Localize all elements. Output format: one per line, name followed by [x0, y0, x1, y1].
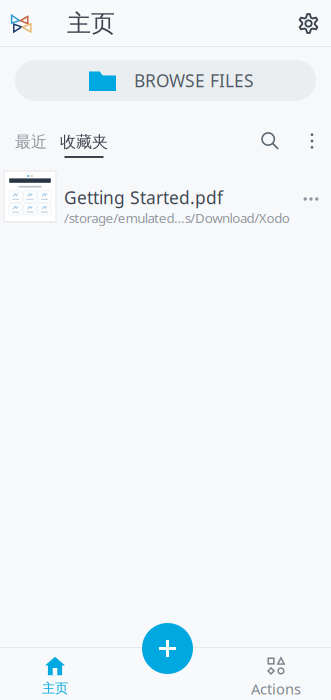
button[interactable]: More options [298, 128, 326, 154]
staticText: 收藏夹 [60, 132, 108, 152]
staticText: 最近 [15, 132, 47, 152]
staticText: 主页 [42, 680, 68, 696]
button[interactable]: 收藏夹 [58, 128, 110, 158]
staticText: Actions [251, 679, 301, 698]
button[interactable]: Settings [286, 0, 331, 46]
button[interactable]: Actions [221, 647, 331, 700]
button[interactable]: Create [142, 623, 193, 674]
staticText: Getting Started.pdf [64, 186, 223, 209]
staticText: /storage/emulated…s/Download/Xodo [64, 209, 290, 227]
button[interactable]: BROWSE FILES [15, 60, 316, 101]
button[interactable]: 最近 [4, 128, 58, 158]
staticText: BROWSE FILES [134, 69, 254, 92]
staticText: 主页 [67, 9, 115, 38]
button[interactable]: Search [255, 128, 285, 154]
button[interactable]: Getting Started.pdf [0, 171, 331, 227]
button[interactable]: 主页 [0, 647, 110, 700]
